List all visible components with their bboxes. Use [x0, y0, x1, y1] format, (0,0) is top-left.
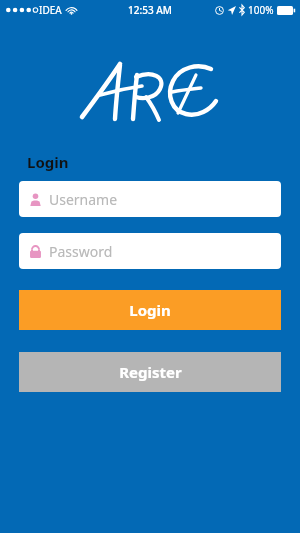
other: Username: [29, 193, 42, 206]
staticText: 12:53 AM: [128, 3, 172, 17]
staticText: Register: [119, 362, 182, 382]
staticText: Login: [27, 152, 69, 172]
button[interactable]: Username: [19, 181, 281, 217]
staticText: IDEA: [39, 3, 62, 17]
other: Password: [29, 245, 42, 258]
button[interactable]: Password: [19, 233, 281, 269]
staticText: Login: [129, 300, 171, 320]
staticText: Password: [49, 242, 113, 261]
button[interactable]: Register: [19, 352, 281, 392]
button[interactable]: Login: [19, 290, 281, 330]
staticText: Username: [49, 190, 118, 209]
staticText: 100%: [248, 3, 274, 17]
